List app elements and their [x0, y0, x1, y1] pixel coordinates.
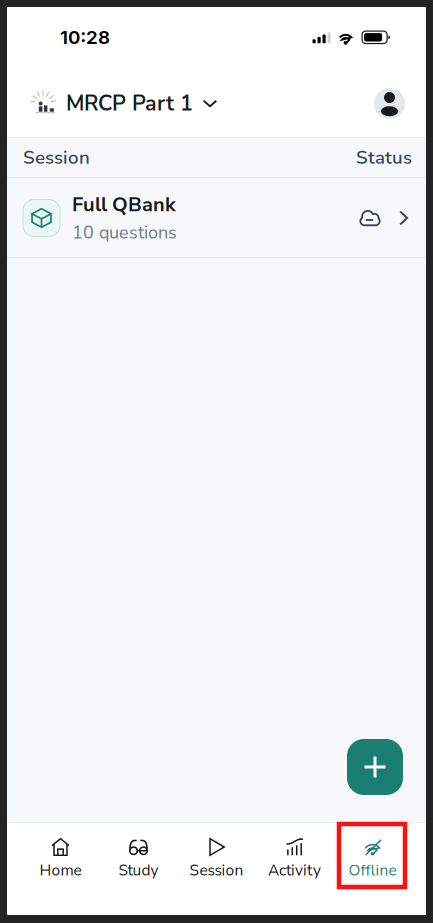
- staticText: Session: [23, 145, 90, 170]
- staticText: MRCP Part 1: [66, 89, 193, 118]
- button[interactable]: Profile: [374, 88, 405, 119]
- button[interactable]: Activity: [255, 822, 333, 915]
- button[interactable]: Session: [177, 822, 255, 915]
- staticText: Home: [39, 860, 81, 881]
- button[interactable]: Study: [99, 822, 177, 915]
- staticText: Study: [118, 860, 158, 881]
- staticText: Activity: [268, 860, 321, 881]
- button[interactable]: New session: [347, 739, 403, 795]
- button[interactable]: Full QBank: [7, 178, 426, 258]
- button[interactable]: Home: [21, 822, 99, 915]
- staticText: Offline: [348, 860, 396, 881]
- staticText: 10 questions: [72, 220, 177, 245]
- staticText: Full QBank: [72, 191, 176, 218]
- staticText: 10:28: [60, 26, 110, 49]
- staticText: Status: [356, 145, 412, 170]
- staticText: Session: [189, 860, 243, 881]
- button[interactable]: MRCP Part 1: [31, 81, 217, 126]
- button[interactable]: Offline: [333, 822, 411, 915]
